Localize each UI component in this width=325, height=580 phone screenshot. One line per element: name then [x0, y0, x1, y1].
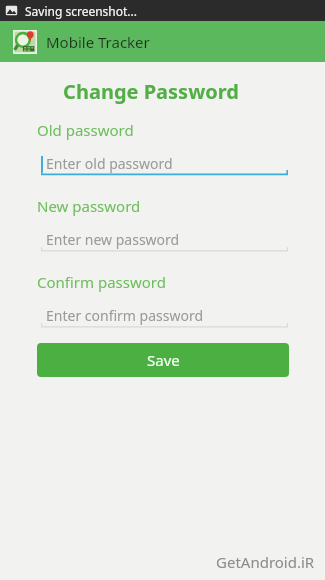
staticText: Saving screenshot...	[25, 3, 138, 19]
staticText: Change Password	[37, 78, 265, 105]
button[interactable]: Enter new password	[41, 226, 288, 252]
staticText: GetAndroid.iR	[216, 552, 315, 572]
staticText: Enter confirm password	[46, 306, 204, 325]
button[interactable]: Enter confirm password	[41, 302, 288, 328]
staticText: Old password	[37, 120, 134, 140]
button[interactable]: Save	[37, 343, 289, 377]
staticText: Enter new password	[46, 230, 180, 249]
staticText: Mobile Tracker	[46, 32, 150, 52]
staticText: Confirm password	[37, 272, 166, 292]
staticText: Enter old password	[46, 154, 173, 173]
other: App icon	[12, 29, 38, 55]
button[interactable]: Enter old password	[41, 150, 288, 176]
staticText: Save	[147, 350, 180, 370]
staticText: New password	[37, 196, 141, 216]
